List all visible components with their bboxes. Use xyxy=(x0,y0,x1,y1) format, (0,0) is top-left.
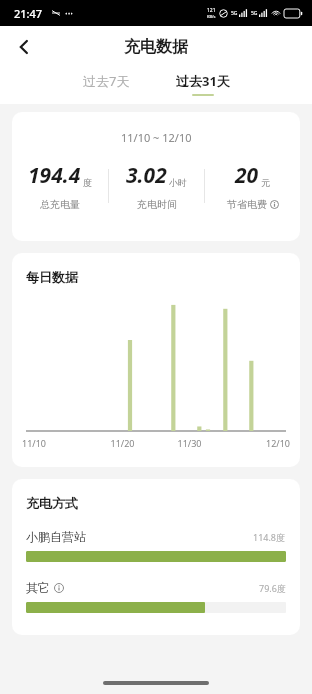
staticText: 12/10 xyxy=(223,437,290,449)
button[interactable]: 过去7天 xyxy=(77,68,136,100)
staticText: 元 xyxy=(261,177,270,188)
staticText: 11/10 ~ 12/10 xyxy=(121,130,192,145)
staticText: 其它 xyxy=(26,580,50,595)
staticText: 过去7天 xyxy=(83,72,130,90)
staticText: ··· xyxy=(65,6,74,20)
staticText: 194.4 xyxy=(28,161,81,190)
staticText: 114.8度 xyxy=(253,531,286,543)
staticText: 21:47 xyxy=(14,6,43,21)
staticText: 11/10 xyxy=(22,437,89,449)
button[interactable]: Back xyxy=(6,29,42,65)
staticText: 121 xyxy=(207,7,216,14)
staticText: 11/20 xyxy=(89,437,156,449)
staticText: 充电时间 xyxy=(137,198,177,211)
button[interactable]: 过去31天 xyxy=(170,68,236,100)
staticText: 20 xyxy=(235,161,259,190)
staticText: 总充电量 xyxy=(40,198,80,211)
staticText: 充电方式 xyxy=(26,495,78,511)
staticText: KB/s xyxy=(207,14,216,19)
button[interactable]: 每日数据 xyxy=(12,253,300,467)
button[interactable]: 小鹏自营站 xyxy=(26,529,286,562)
staticText: 3.02 xyxy=(126,161,167,190)
button[interactable]: 充电方式 xyxy=(12,479,300,635)
button[interactable]: 其它 xyxy=(26,580,286,613)
button[interactable]: 11/10 ~ 12/10 xyxy=(12,112,300,241)
staticText: 小时 xyxy=(169,177,187,188)
staticText: 11/30 xyxy=(156,437,223,449)
staticText: 节省电费 xyxy=(227,198,267,211)
staticText: 充电数据 xyxy=(124,37,188,57)
staticText: 5G xyxy=(231,10,238,17)
staticText: 每日数据 xyxy=(26,269,78,285)
staticText: 小鹏自营站 xyxy=(26,529,86,544)
staticText: 度 xyxy=(83,177,92,188)
staticText: 过去31天 xyxy=(176,72,230,90)
staticText: 79.6度 xyxy=(259,582,286,594)
staticText: 5G xyxy=(251,10,258,17)
